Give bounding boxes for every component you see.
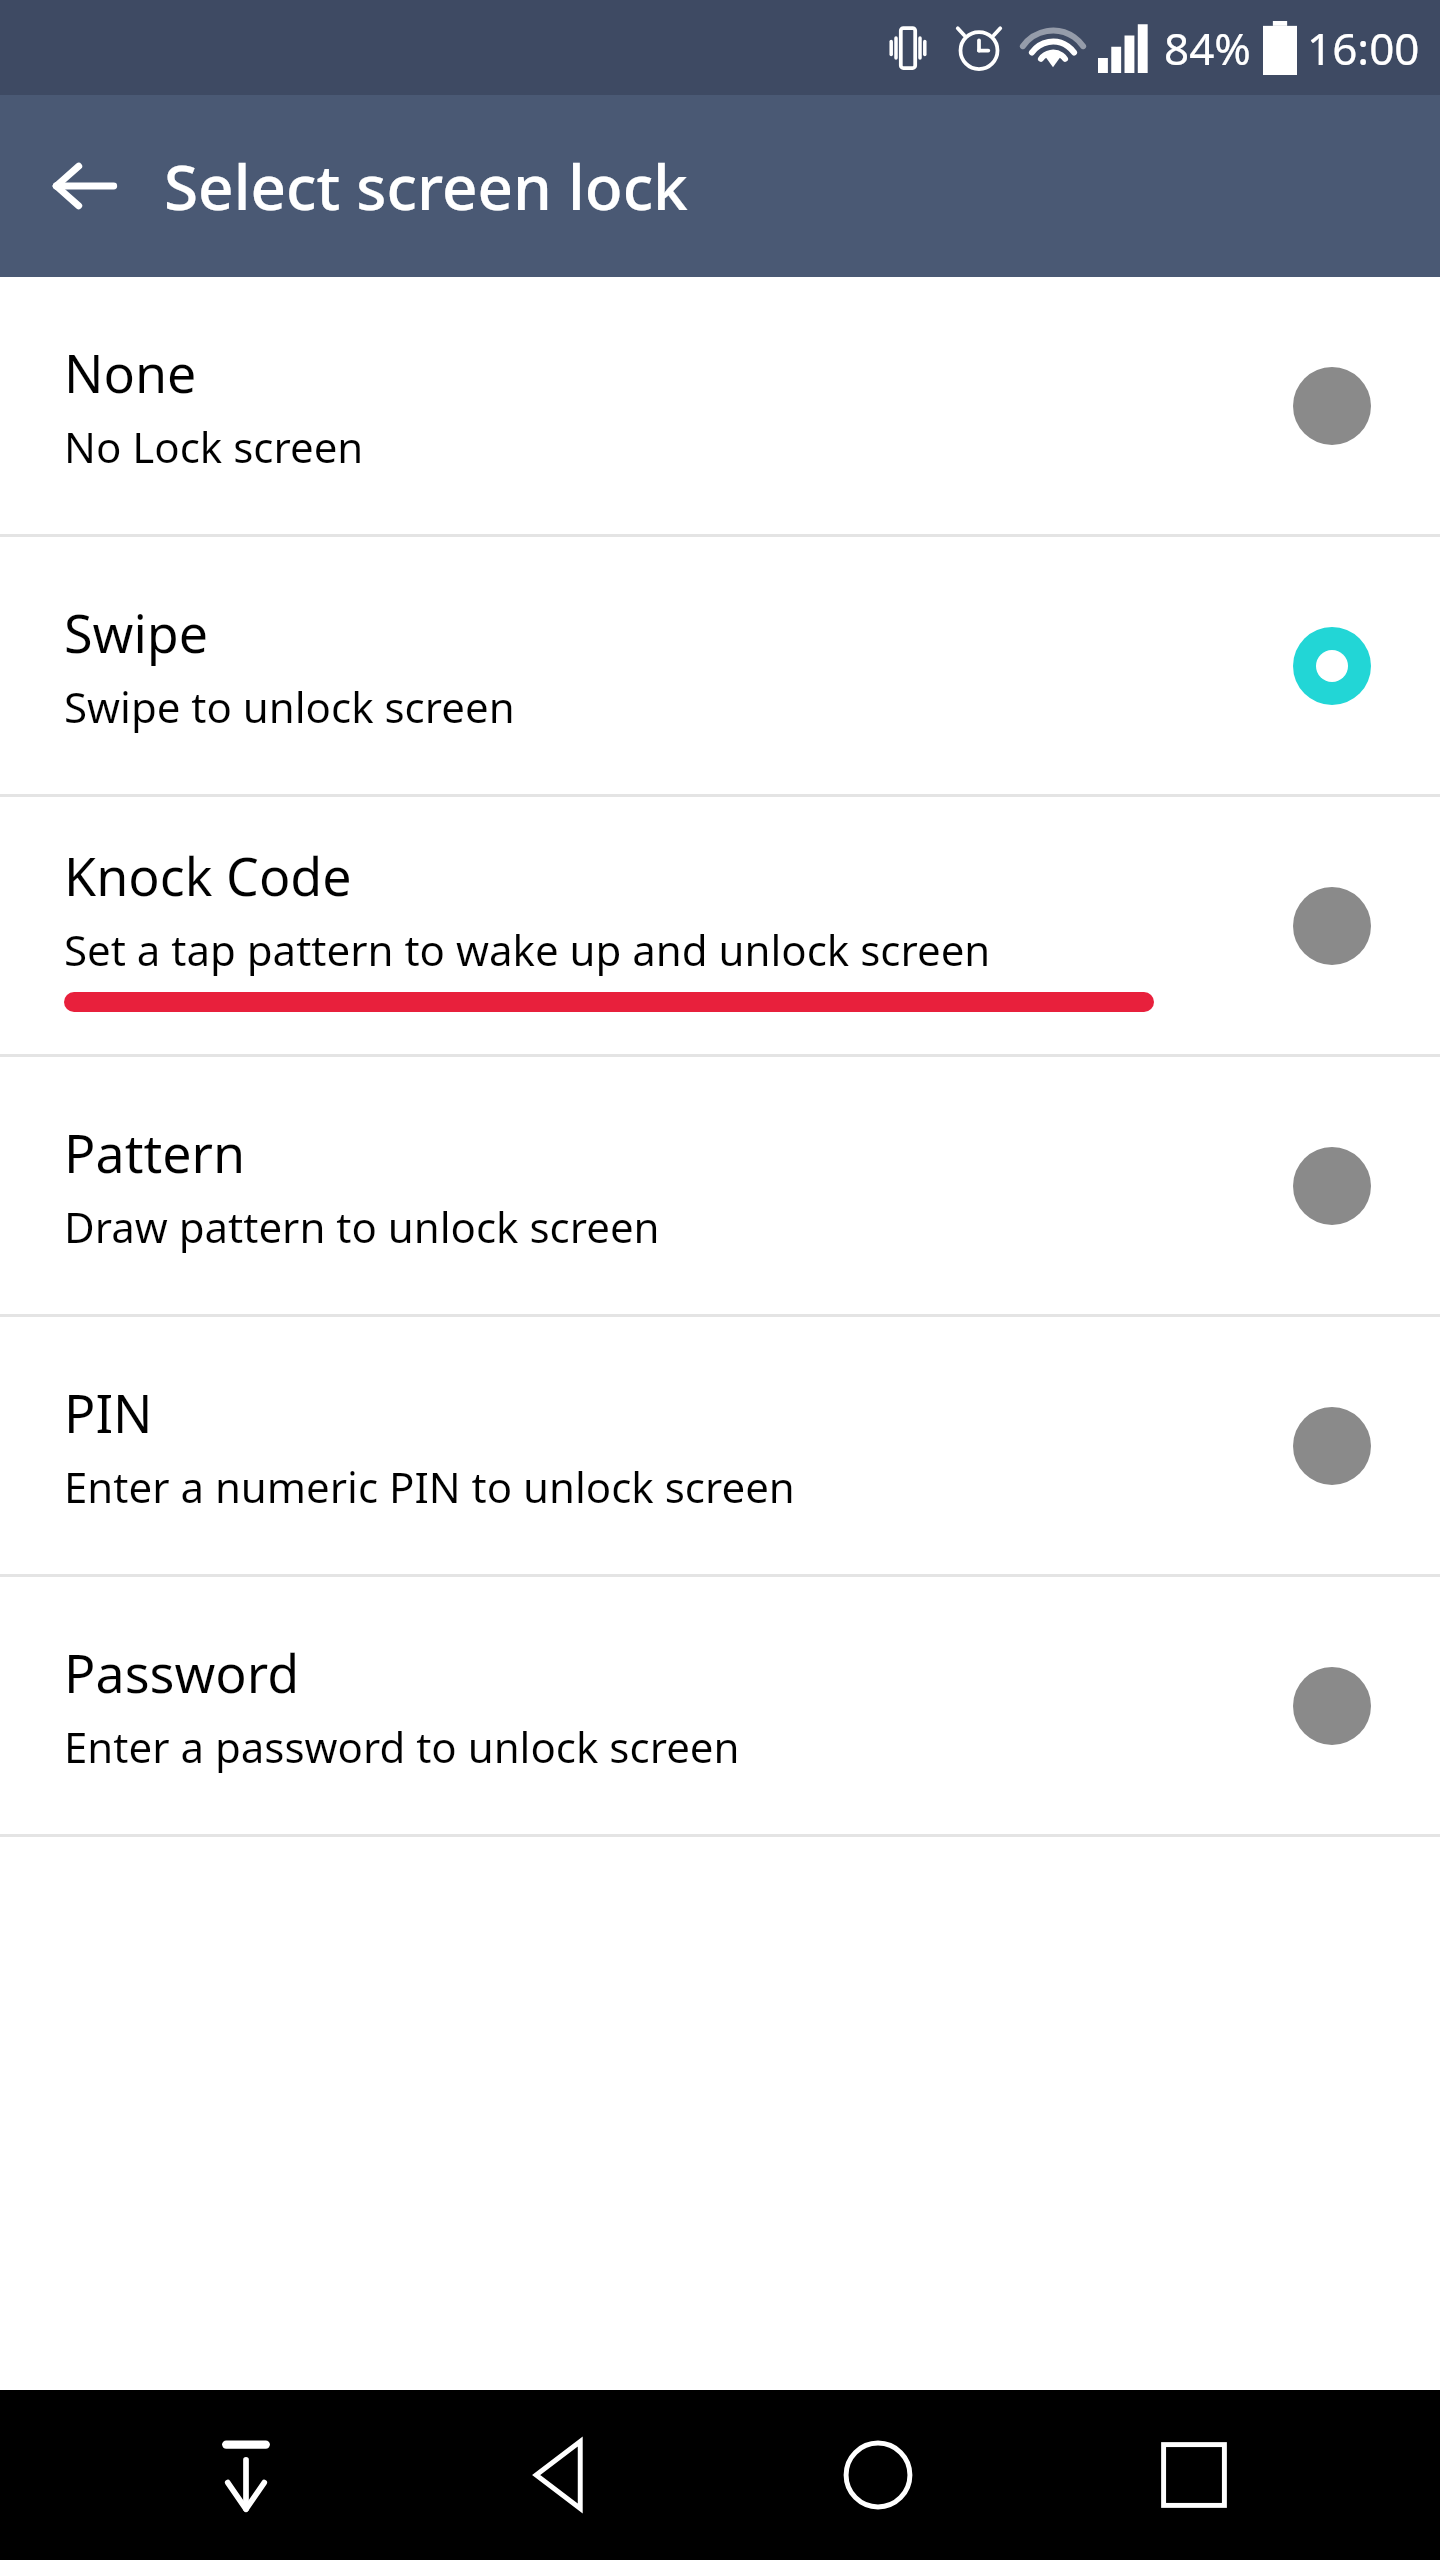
- staticText: PIN: [64, 1377, 153, 1448]
- button[interactable]: Hide keyboard: [176, 2405, 316, 2545]
- staticText: 84%: [1164, 18, 1251, 78]
- staticText: Enter a numeric PIN to unlock screen: [64, 1458, 795, 1515]
- button[interactable]: Knock Code: [0, 797, 1440, 1054]
- button[interactable]: Password: [0, 1577, 1440, 1834]
- staticText: Draw pattern to unlock screen: [64, 1198, 660, 1255]
- staticText: Knock Code: [64, 840, 352, 911]
- staticText: Enter a password to unlock screen: [64, 1718, 740, 1775]
- staticText: Set a tap pattern to wake up and unlock …: [64, 921, 991, 978]
- staticText: 16:00: [1307, 18, 1420, 78]
- button[interactable]: Home: [808, 2405, 948, 2545]
- button[interactable]: None: [0, 277, 1440, 534]
- button[interactable]: PIN: [0, 1317, 1440, 1574]
- staticText: Swipe to unlock screen: [64, 678, 515, 735]
- staticText: None: [64, 337, 197, 408]
- button[interactable]: Back: [492, 2405, 632, 2545]
- staticText: Pattern: [64, 1117, 246, 1188]
- staticText: Select screen lock: [164, 144, 688, 228]
- staticText: No Lock screen: [64, 418, 364, 475]
- button[interactable]: Pattern: [0, 1057, 1440, 1314]
- button[interactable]: Swipe: [0, 537, 1440, 794]
- button[interactable]: Recents: [1124, 2405, 1264, 2545]
- staticText: Swipe: [64, 597, 209, 668]
- staticText: Password: [64, 1637, 300, 1708]
- button[interactable]: Back: [36, 138, 132, 234]
